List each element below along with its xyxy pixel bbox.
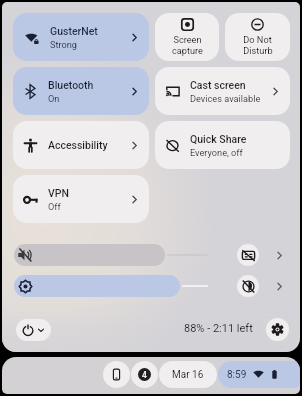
staticText: 88% - 2:11 left: [184, 322, 253, 335]
staticText: Everyone, off: [190, 147, 243, 158]
button[interactable]: VPN: [13, 175, 149, 223]
staticText: Screen: [173, 34, 202, 45]
button[interactable]: Live caption off: [237, 244, 259, 266]
button[interactable]: GusterNet: [13, 13, 149, 61]
button[interactable]: Cast screen: [155, 67, 290, 115]
staticText: GusterNet: [50, 25, 98, 37]
staticText: Mar 16: [172, 369, 204, 381]
button[interactable]: Mar 16: [159, 361, 217, 388]
staticText: On: [48, 93, 60, 104]
button[interactable]: Slider: [14, 275, 210, 297]
button[interactable]: Do Not: [225, 13, 290, 61]
staticText: VPN: [48, 187, 69, 199]
staticText: capture: [172, 45, 203, 56]
button[interactable]: More settings: [268, 244, 290, 266]
staticText: 8:59: [227, 369, 247, 381]
button[interactable]: Accessibility: [13, 121, 149, 169]
staticText: Quick Share: [190, 133, 247, 145]
staticText: Cast screen: [190, 79, 246, 91]
staticText: Strong: [50, 39, 77, 50]
button[interactable]: 8:59: [218, 361, 300, 388]
button[interactable]: Power menu: [16, 319, 51, 341]
staticText: 4: [142, 370, 147, 380]
staticText: Off: [48, 201, 61, 212]
button[interactable]: Dark theme off: [237, 275, 259, 297]
staticText: Bluetooth: [48, 79, 94, 91]
staticText: Do Not: [243, 34, 272, 45]
button[interactable]: Notifications: [131, 361, 158, 388]
staticText: Disturb: [243, 45, 273, 56]
button[interactable]: Bluetooth: [13, 67, 149, 115]
button[interactable]: Phone hub: [103, 361, 130, 388]
button[interactable]: Quick Share: [155, 121, 290, 169]
staticText: Accessibility: [48, 139, 108, 151]
button[interactable]: More settings: [268, 275, 290, 297]
button[interactable]: Settings: [266, 318, 289, 341]
button[interactable]: Screen: [155, 13, 219, 61]
button[interactable]: Slider: [14, 244, 210, 266]
staticText: Devices available: [190, 93, 261, 104]
